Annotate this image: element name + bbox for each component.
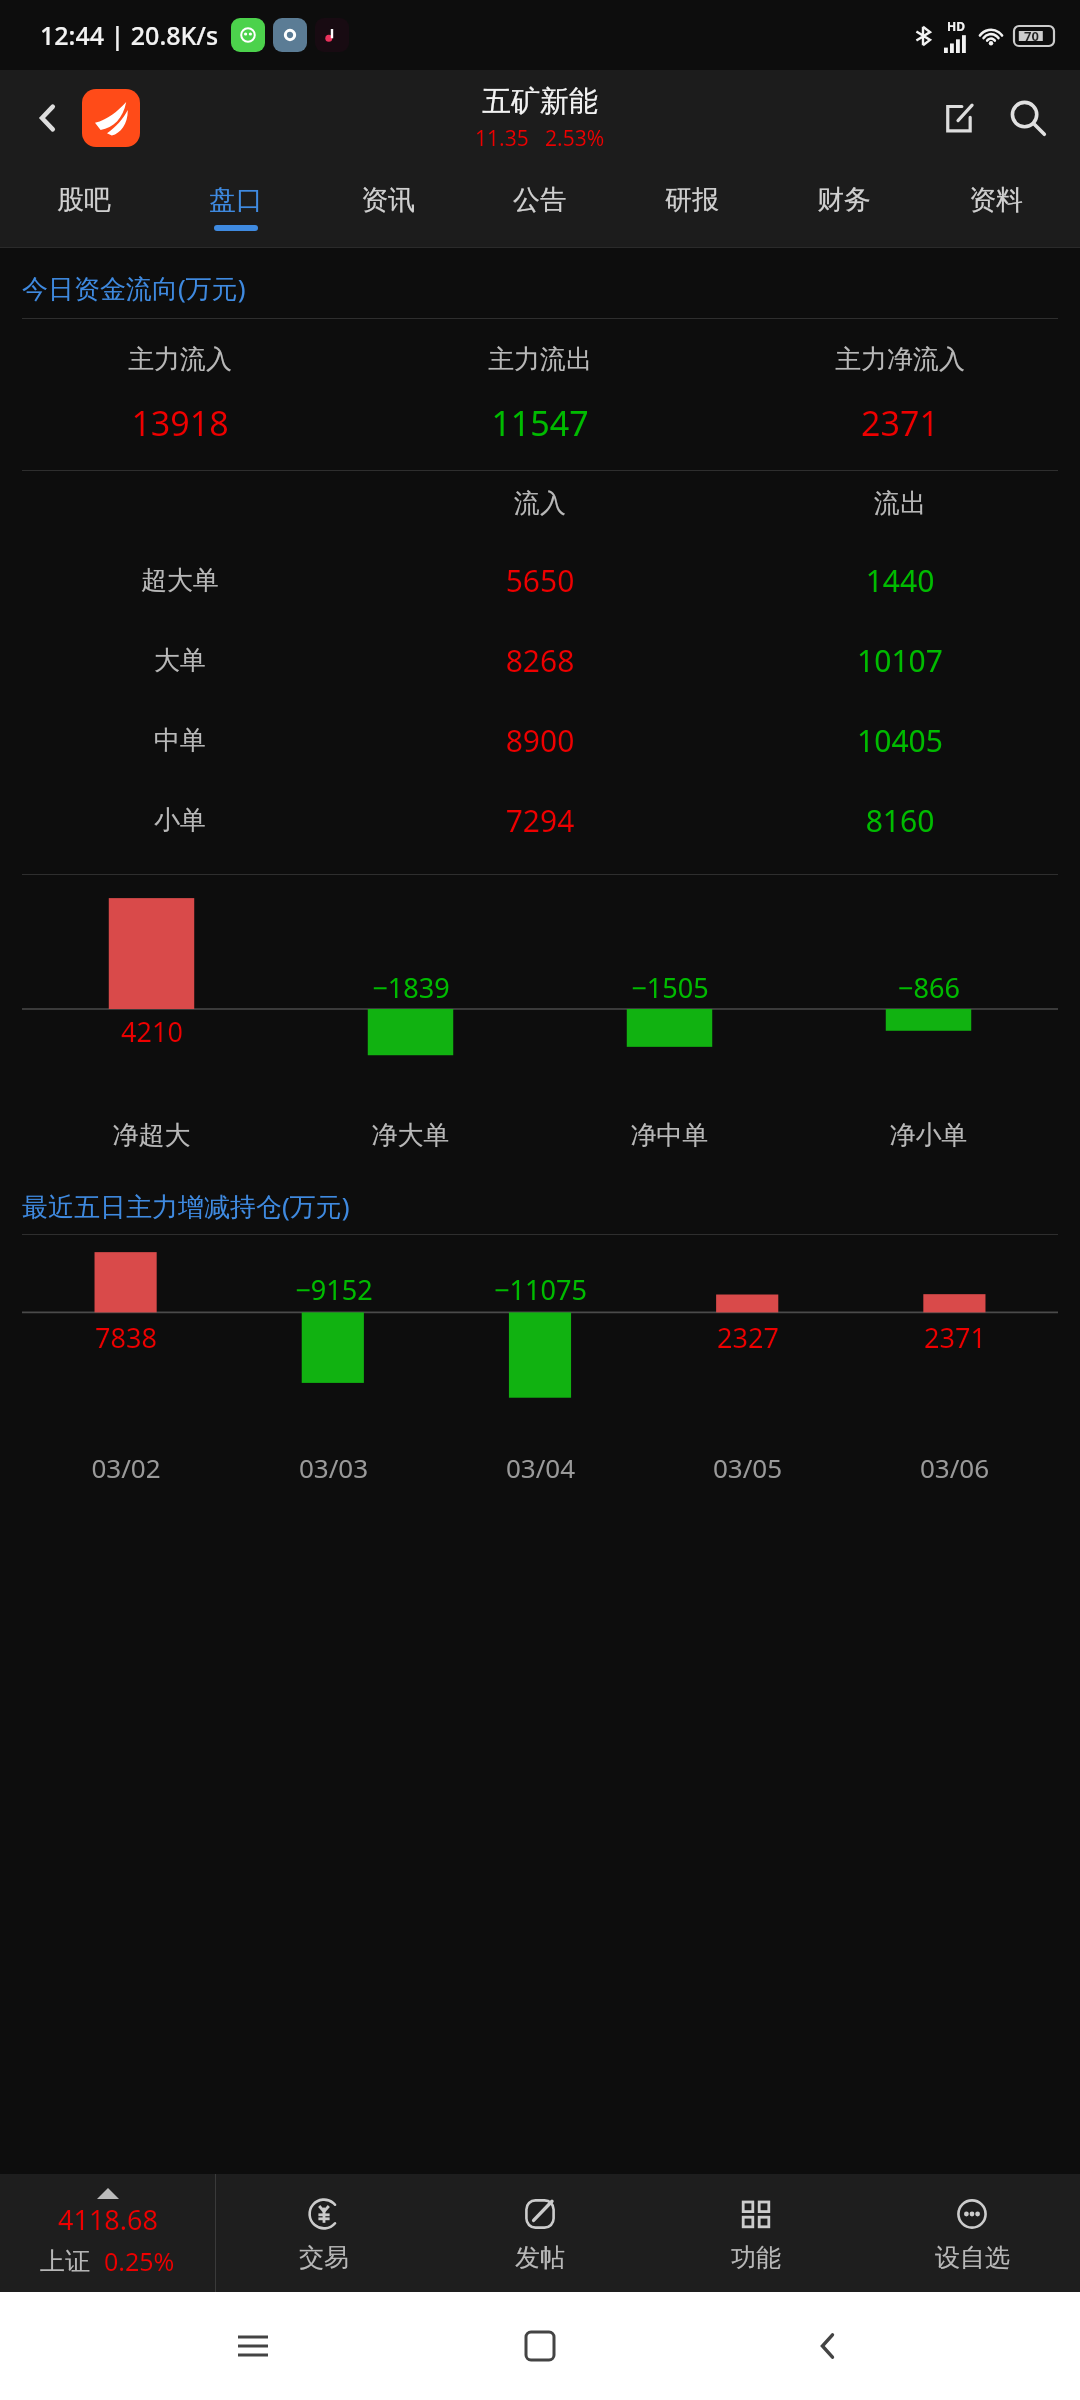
- staticText: 8268: [360, 640, 720, 681]
- staticText: 净大单: [281, 1119, 540, 1152]
- staticText: −866: [898, 969, 960, 1006]
- button[interactable]: 设自选: [864, 2174, 1080, 2292]
- button[interactable]: Back: [20, 90, 76, 146]
- button[interactable]: Back: [793, 2311, 863, 2381]
- staticText: HD: [947, 18, 965, 34]
- staticText: 设自选: [935, 2242, 1010, 2273]
- staticText: 13918: [0, 400, 360, 446]
- button[interactable]: 资料: [920, 166, 1072, 248]
- staticText: 12:44 | 20.8K/s: [40, 18, 219, 52]
- staticText: 03/04: [437, 1450, 644, 1485]
- staticText: 流入: [360, 487, 720, 520]
- staticText: 上证: [40, 2246, 90, 2277]
- button[interactable]: 股吧: [8, 166, 160, 248]
- staticText: 股吧: [57, 183, 111, 217]
- button[interactable]: 盘口: [160, 166, 312, 248]
- staticText: 8160: [720, 800, 1080, 841]
- staticText: 财务: [817, 183, 871, 217]
- staticText: 4210: [121, 1013, 183, 1050]
- button[interactable]: 超大单: [0, 540, 1080, 620]
- staticText: 主力净流入: [720, 343, 1080, 376]
- button[interactable]: 研报: [616, 166, 768, 248]
- staticText: 2.53%: [545, 124, 605, 153]
- staticText: 中单: [0, 724, 360, 757]
- staticText: −1505: [631, 969, 709, 1006]
- button[interactable]: 公告: [464, 166, 616, 248]
- staticText: 2371: [720, 400, 1080, 446]
- staticText: 流出: [720, 487, 1080, 520]
- staticText: 10107: [720, 640, 1080, 681]
- staticText: 今日资金流向(万元): [22, 270, 246, 306]
- staticText: 2327: [717, 1319, 779, 1356]
- staticText: 盘口: [209, 183, 263, 217]
- staticText: 五矿新能: [482, 83, 598, 120]
- button[interactable]: 小单: [0, 780, 1080, 860]
- staticText: 净超大: [22, 1119, 281, 1152]
- staticText: 主力流入: [0, 343, 360, 376]
- staticText: 2371: [924, 1319, 986, 1356]
- staticText: 03/05: [644, 1450, 851, 1485]
- button[interactable]: 中单: [0, 700, 1080, 780]
- button[interactable]: Share: [926, 86, 990, 150]
- staticText: 10405: [720, 720, 1080, 761]
- staticText: 8900: [360, 720, 720, 761]
- staticText: 4118.68: [58, 2201, 158, 2238]
- button[interactable]: 财务: [768, 166, 920, 248]
- staticText: −9152: [295, 1271, 373, 1308]
- staticText: 70: [1024, 27, 1039, 45]
- staticText: −11075: [494, 1271, 587, 1308]
- staticText: 11547: [360, 400, 720, 446]
- staticText: 公告: [513, 183, 567, 217]
- staticText: 发帖: [515, 2242, 565, 2273]
- staticText: 1440: [720, 560, 1080, 601]
- staticText: 11.35: [475, 124, 529, 153]
- staticText: 交易: [299, 2242, 349, 2273]
- staticText: 功能: [731, 2242, 781, 2273]
- staticText: 研报: [665, 183, 719, 217]
- button[interactable]: East Money logo: [82, 89, 140, 147]
- staticText: 03/06: [851, 1450, 1058, 1485]
- button[interactable]: 发帖: [432, 2174, 648, 2292]
- staticText: 超大单: [0, 564, 360, 597]
- staticText: 最近五日主力增减持仓(万元): [22, 1188, 350, 1224]
- staticText: 0.25%: [104, 2244, 175, 2278]
- button[interactable]: 功能: [648, 2174, 864, 2292]
- button[interactable]: 资讯: [312, 166, 464, 248]
- staticText: 资料: [969, 183, 1023, 217]
- staticText: 7294: [360, 800, 720, 841]
- staticText: 5650: [360, 560, 720, 601]
- staticText: 资讯: [361, 183, 415, 217]
- button[interactable]: 交易: [216, 2174, 432, 2292]
- staticText: −1839: [372, 969, 450, 1006]
- staticText: 03/02: [22, 1450, 230, 1485]
- staticText: 7838: [95, 1319, 157, 1356]
- button[interactable]: 4118.68: [0, 2174, 215, 2292]
- staticText: 净小单: [799, 1119, 1058, 1152]
- button[interactable]: Search: [996, 86, 1060, 150]
- staticText: 净中单: [540, 1119, 799, 1152]
- staticText: 03/03: [230, 1450, 437, 1485]
- button[interactable]: Recents: [218, 2311, 288, 2381]
- staticText: 主力流出: [360, 343, 720, 376]
- button[interactable]: Home: [505, 2311, 575, 2381]
- button[interactable]: 大单: [0, 620, 1080, 700]
- staticText: 小单: [0, 804, 360, 837]
- staticText: 大单: [0, 644, 360, 677]
